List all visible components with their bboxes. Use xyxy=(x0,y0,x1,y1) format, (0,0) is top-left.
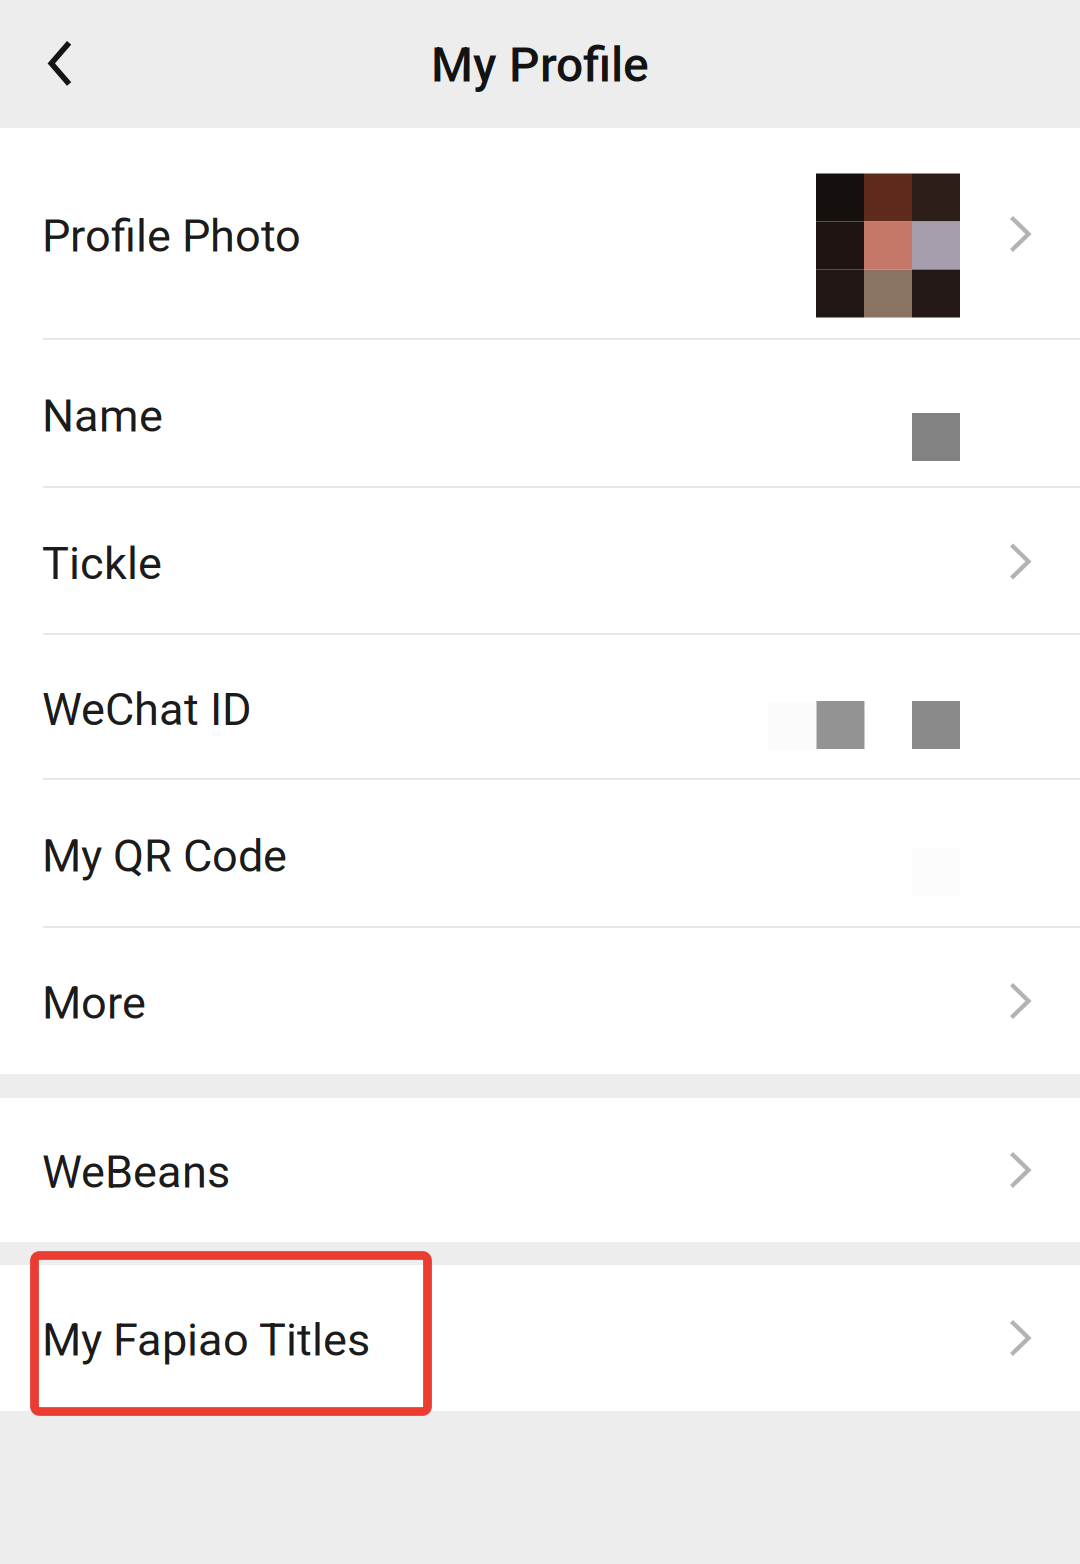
button[interactable]: Profile Photo xyxy=(0,128,1080,340)
button[interactable]: More xyxy=(0,928,1080,1074)
staticText: My QR Code xyxy=(42,830,287,882)
staticText: WeBeans xyxy=(42,1146,230,1198)
button[interactable]: Back xyxy=(0,0,118,128)
staticText: My Fapiao Titles xyxy=(42,1314,370,1366)
staticText: Name xyxy=(42,390,163,442)
staticText: Tickle xyxy=(42,537,162,590)
button[interactable]: Tickle xyxy=(0,488,1080,635)
staticText: Profile Photo xyxy=(42,210,301,262)
button[interactable]: My QR Code xyxy=(0,780,1080,928)
button[interactable]: My Fapiao Titles xyxy=(0,1265,1080,1411)
staticText: My Profile xyxy=(431,37,649,93)
staticText: WeChat ID xyxy=(42,683,252,736)
button[interactable]: Name xyxy=(0,340,1080,488)
button[interactable]: WeChat ID xyxy=(0,635,1080,780)
staticText: More xyxy=(42,977,146,1029)
button[interactable]: WeBeans xyxy=(0,1098,1080,1242)
